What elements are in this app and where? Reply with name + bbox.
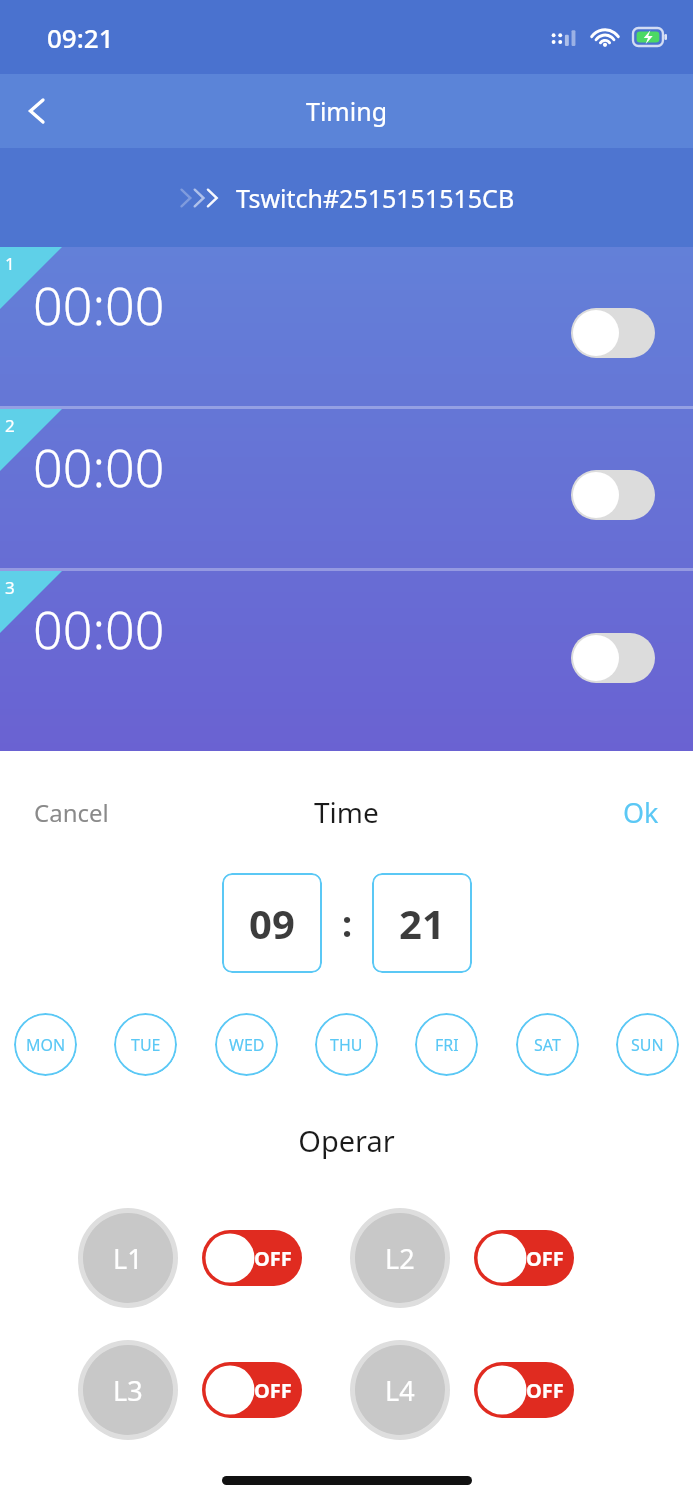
button[interactable]: Enable timer 2: [571, 470, 655, 520]
staticText: 1: [5, 252, 15, 275]
button[interactable]: SAT: [516, 1013, 579, 1076]
staticText: OFF: [526, 1245, 564, 1272]
staticText: :: [342, 899, 353, 948]
staticText: 2: [5, 414, 15, 437]
staticText: 00:00: [33, 431, 165, 502]
staticText: Ok: [623, 794, 659, 831]
button[interactable]: L3 off: [202, 1362, 302, 1418]
staticText: Timing: [306, 94, 388, 128]
button[interactable]: L4 off: [474, 1362, 574, 1418]
staticText: THU: [330, 1034, 363, 1056]
staticText: MON: [26, 1034, 66, 1056]
button[interactable]: 1: [0, 247, 693, 406]
staticText: 3: [5, 576, 15, 599]
staticText: L3: [113, 1372, 143, 1409]
staticText: L2: [385, 1240, 415, 1277]
staticText: OFF: [254, 1377, 292, 1404]
button[interactable]: THU: [315, 1013, 378, 1076]
staticText: FRI: [435, 1034, 459, 1056]
button[interactable]: Tswitch#2515151515CB: [0, 148, 693, 247]
staticText: 00:00: [33, 269, 165, 340]
button[interactable]: L3: [83, 1345, 173, 1435]
staticText: OFF: [526, 1377, 564, 1404]
button[interactable]: TUE: [114, 1013, 177, 1076]
button[interactable]: 21: [372, 873, 472, 973]
staticText: Operar: [0, 1121, 693, 1160]
staticText: Cancel: [34, 796, 109, 829]
staticText: SAT: [534, 1034, 561, 1056]
staticText: 21: [399, 896, 445, 950]
button[interactable]: 2: [0, 409, 693, 568]
button[interactable]: 3: [0, 571, 693, 732]
staticText: 09:21: [47, 20, 114, 55]
staticText: SUN: [631, 1034, 664, 1056]
button[interactable]: FRI: [415, 1013, 478, 1076]
staticText: OFF: [254, 1245, 292, 1272]
button[interactable]: Cancel: [16, 784, 127, 841]
button[interactable]: Back: [0, 74, 74, 148]
staticText: 00:00: [33, 593, 165, 664]
staticText: L4: [385, 1372, 415, 1409]
button[interactable]: Enable timer 3: [571, 633, 655, 683]
button[interactable]: SUN: [616, 1013, 679, 1076]
staticText: L1: [113, 1240, 143, 1277]
staticText: Time: [314, 793, 379, 831]
button[interactable]: WED: [215, 1013, 278, 1076]
button[interactable]: 09: [222, 873, 322, 973]
button[interactable]: L1 off: [202, 1230, 302, 1286]
button[interactable]: MON: [14, 1013, 77, 1076]
button[interactable]: L1: [83, 1213, 173, 1303]
staticText: 09: [249, 896, 295, 950]
button[interactable]: L2 off: [474, 1230, 574, 1286]
staticText: WED: [229, 1034, 265, 1056]
button[interactable]: Ok: [605, 782, 677, 843]
button[interactable]: L4: [355, 1345, 445, 1435]
staticText: Tswitch#2515151515CB: [236, 181, 515, 215]
staticText: TUE: [131, 1034, 161, 1056]
button[interactable]: Enable timer 1: [571, 308, 655, 358]
button[interactable]: L2: [355, 1213, 445, 1303]
